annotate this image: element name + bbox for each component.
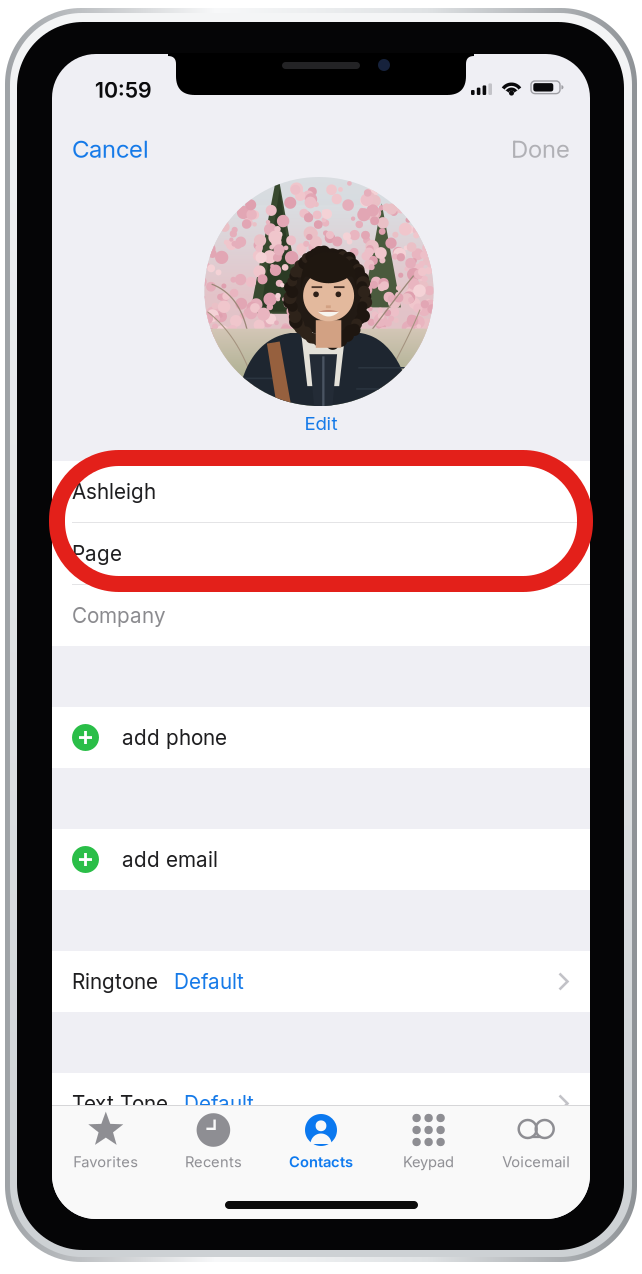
staticText: Ringtone	[72, 969, 158, 994]
staticText: add email	[122, 847, 218, 872]
button[interactable]: add email	[52, 829, 590, 890]
button[interactable]: Contacts	[267, 1112, 375, 1176]
staticText: Ashleigh	[72, 479, 156, 504]
staticText: 10:59	[95, 77, 152, 103]
staticText: Page	[72, 541, 122, 566]
button[interactable]: Text Tone	[52, 1073, 590, 1134]
button[interactable]: Company	[52, 585, 590, 646]
staticText: Voicemail	[502, 1153, 570, 1171]
staticText: Default	[174, 969, 244, 994]
staticText: Edit	[304, 412, 337, 435]
button[interactable]: Page	[52, 523, 590, 584]
staticText: Keypad	[403, 1153, 454, 1171]
button[interactable]: Edit	[284, 407, 357, 447]
button[interactable]: Cancel	[52, 118, 165, 175]
staticText: Contacts	[289, 1153, 353, 1171]
staticText: Default	[184, 1091, 254, 1116]
staticText: Cancel	[72, 134, 149, 163]
button[interactable]: Favorites	[52, 1112, 160, 1176]
button[interactable]: Recents	[160, 1112, 267, 1176]
button[interactable]: Ashleigh	[52, 461, 590, 522]
staticText: Done	[511, 134, 570, 163]
button[interactable]: Voicemail	[482, 1112, 590, 1176]
staticText: Text Tone	[72, 1091, 168, 1116]
staticText: Company	[72, 603, 166, 628]
button[interactable]: Keypad	[375, 1112, 482, 1176]
button[interactable]: Done	[495, 118, 590, 175]
button[interactable]: add phone	[52, 707, 590, 768]
staticText: Recents	[185, 1153, 242, 1171]
staticText: Favorites	[73, 1153, 138, 1171]
staticText: add phone	[122, 725, 227, 750]
button[interactable]: Ringtone	[52, 951, 590, 1012]
